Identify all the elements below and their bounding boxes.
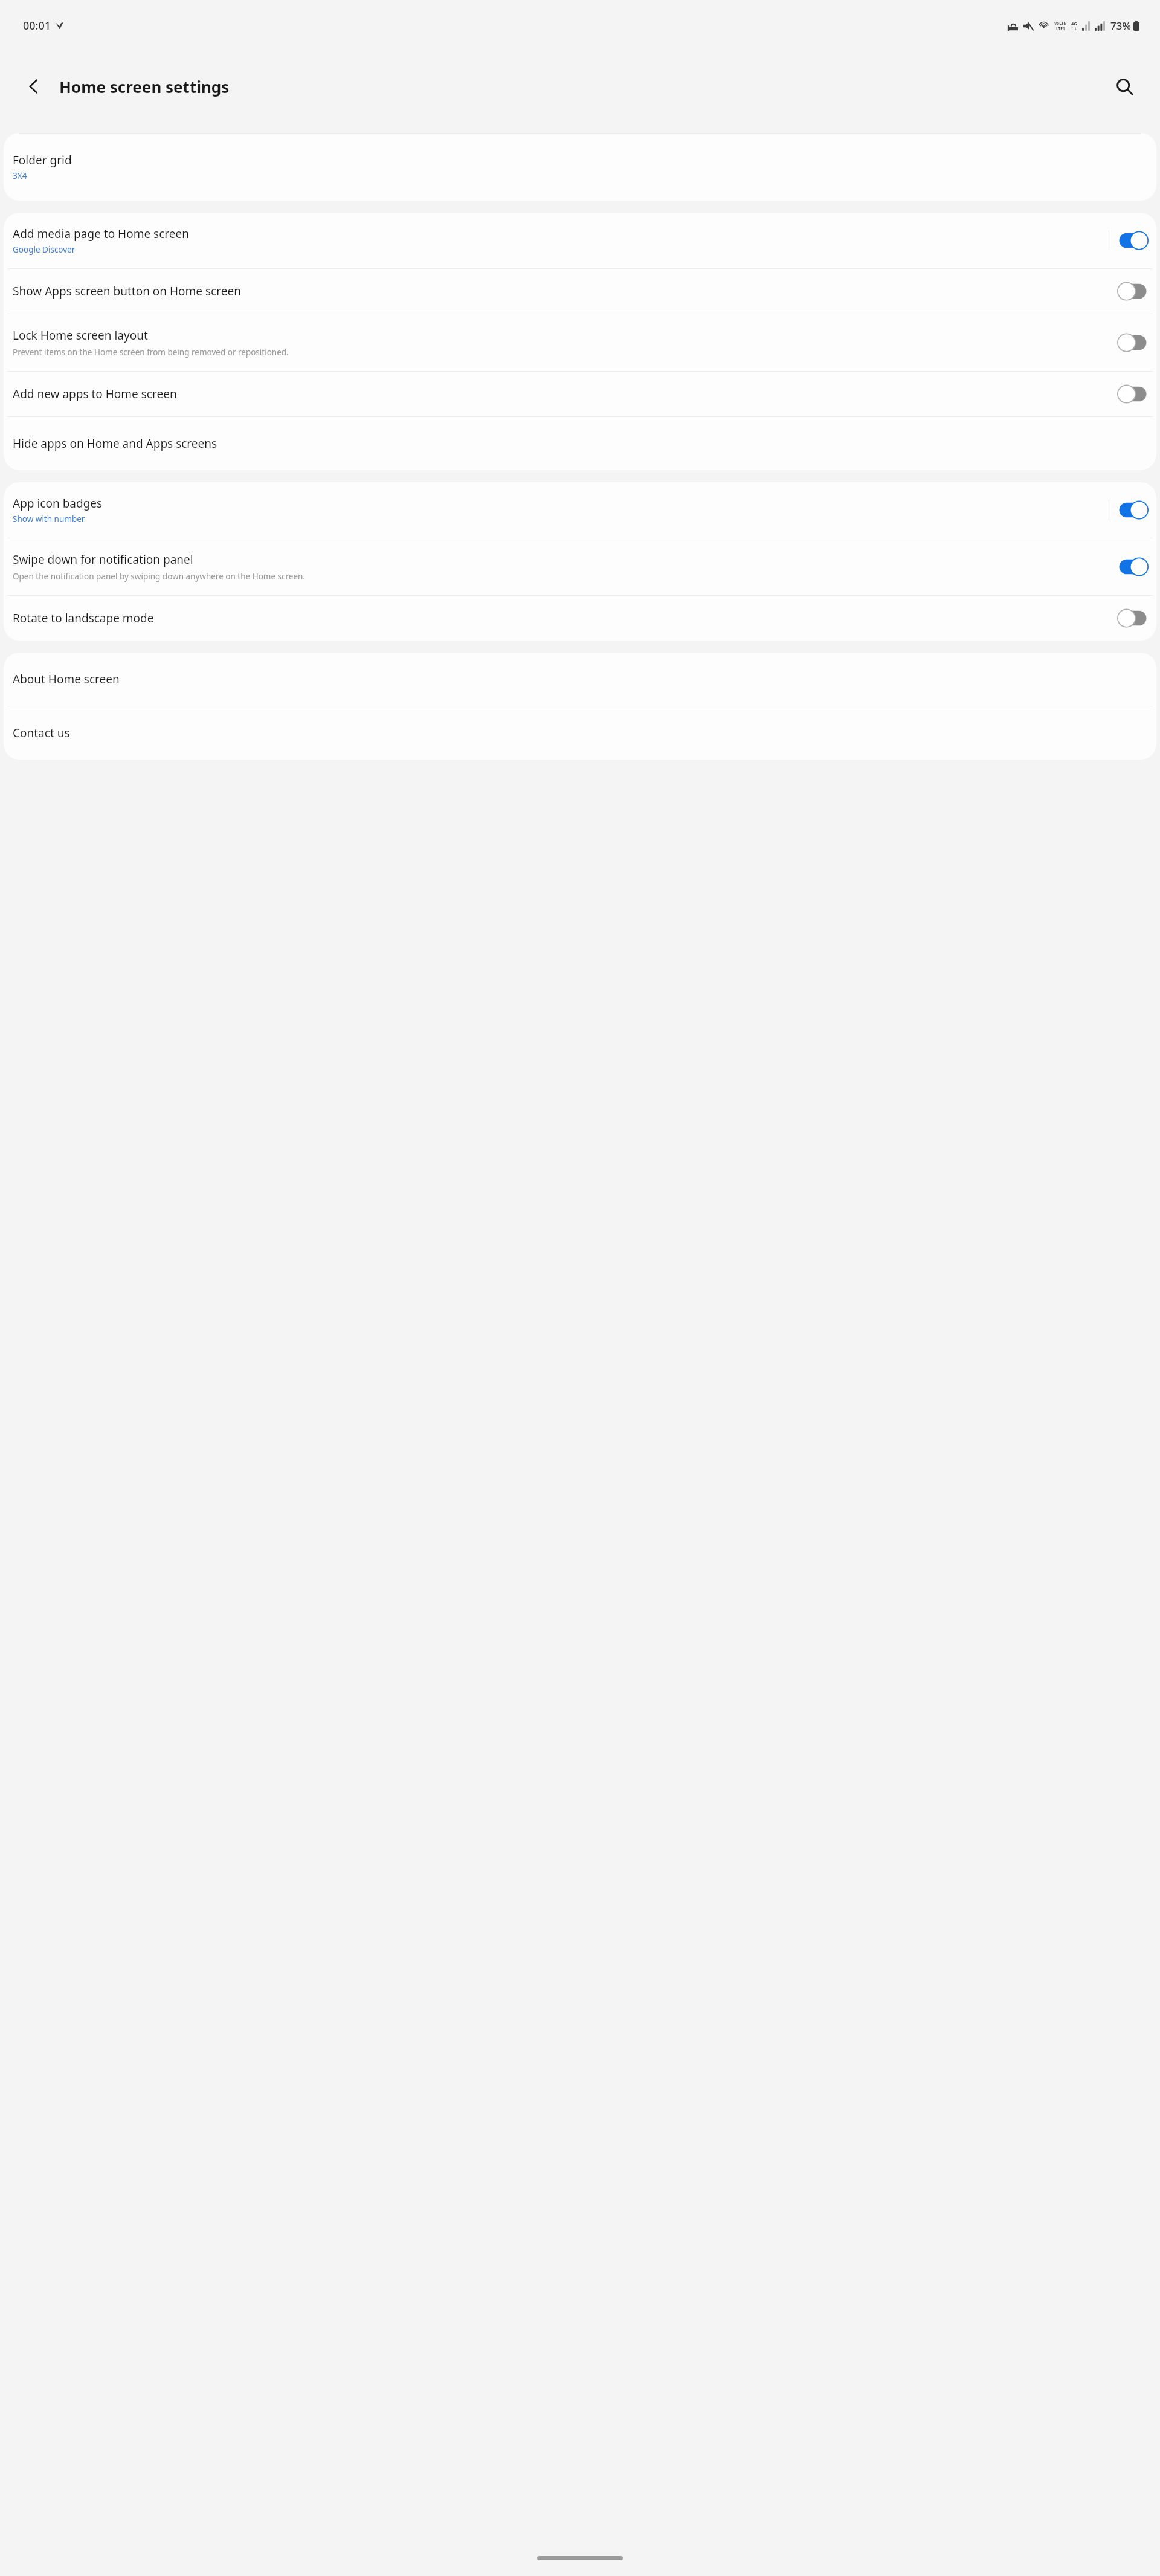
button[interactable]: Add media page to Home screen [4, 213, 1156, 268]
staticText: 00:01 [23, 18, 51, 33]
button[interactable]: On [1118, 501, 1148, 519]
button[interactable]: Add new apps to Home screen [4, 372, 1156, 416]
button[interactable]: On [1118, 231, 1148, 250]
staticText: Prevent items on the Home screen from be… [13, 347, 289, 358]
staticText: Rotate to landscape mode [13, 610, 154, 626]
button[interactable]: Show Apps screen button on Home screen [4, 269, 1156, 314]
button[interactable]: Off [1118, 282, 1148, 300]
staticText: Contact us [13, 725, 70, 741]
button[interactable]: Rotate to landscape mode [4, 596, 1156, 641]
staticText: LTE1 [1056, 26, 1065, 31]
button[interactable]: Off [1118, 334, 1148, 352]
staticText: Show Apps screen button on Home screen [13, 283, 241, 299]
button[interactable]: App icon badges [4, 482, 1156, 538]
button[interactable]: Contact us [4, 706, 1156, 760]
staticText: Lock Home screen layout [13, 328, 148, 343]
button[interactable]: About Home screen [4, 653, 1156, 706]
staticText: 4G [1071, 21, 1077, 27]
staticText: Show with number [13, 514, 85, 525]
staticText: Home screen settings [59, 76, 230, 97]
staticText: Folder grid [13, 152, 72, 168]
staticText: ↑↓ [1071, 27, 1077, 31]
staticText: App icon badges [13, 496, 103, 511]
button[interactable]: On [1118, 558, 1148, 576]
staticText: 73% [1110, 19, 1131, 33]
button[interactable]: Folder grid [4, 134, 1156, 201]
button[interactable]: Hide apps on Home and Apps screens [4, 417, 1156, 470]
staticText: Open the notification panel by swiping d… [13, 571, 306, 582]
staticText: Swipe down for notification panel [13, 552, 193, 567]
button[interactable]: Back [17, 69, 51, 103]
staticText: Add new apps to Home screen [13, 386, 177, 402]
button[interactable]: Swipe down for notification panel [4, 538, 1156, 595]
staticText: Google Discover [13, 244, 76, 255]
staticText: 3X4 [13, 170, 27, 181]
staticText: Add media page to Home screen [13, 226, 189, 242]
button[interactable]: Search [1107, 69, 1142, 104]
button[interactable]: Lock Home screen layout [4, 314, 1156, 371]
button[interactable]: Off [1118, 609, 1148, 627]
staticText: About Home screen [13, 671, 120, 687]
button[interactable]: Off [1118, 385, 1148, 403]
staticText: Hide apps on Home and Apps screens [13, 436, 217, 451]
staticText: VoLTE [1054, 21, 1066, 26]
